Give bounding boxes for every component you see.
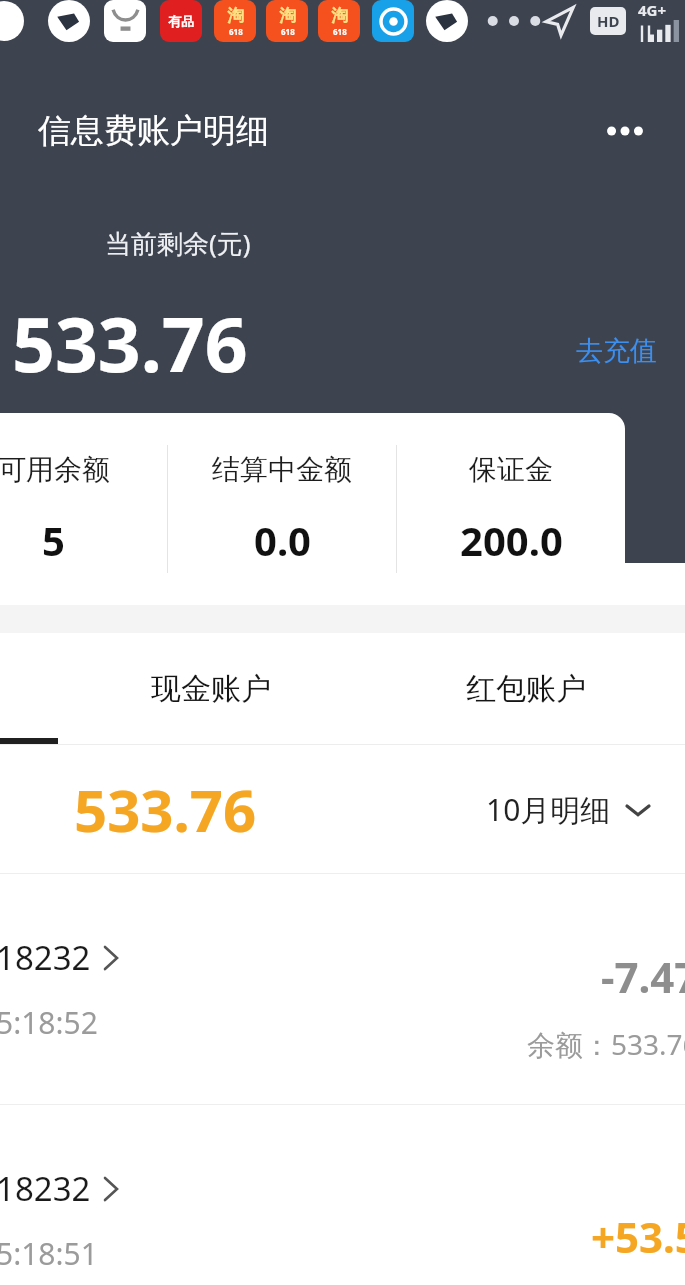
staticText: 去充值 xyxy=(576,334,657,368)
staticText: 18232 xyxy=(0,1166,91,1211)
staticText: 保证金 xyxy=(469,452,553,487)
staticText: -7.47 xyxy=(601,948,685,1005)
staticText: 淘 xyxy=(331,5,348,26)
staticText: 淘 xyxy=(227,5,244,26)
button[interactable]: 18232 xyxy=(0,1105,685,1285)
staticText: 533.76 xyxy=(74,770,257,849)
staticText: 当前剩余(元) xyxy=(105,225,251,261)
staticText: 有品 xyxy=(168,13,194,29)
staticText: 5:18:52 xyxy=(0,1002,98,1043)
staticText: 0.0 xyxy=(254,513,311,567)
staticText: 结算中金额 xyxy=(212,452,352,487)
staticText: 10月明细 xyxy=(486,789,611,830)
staticText: 余额：533.76 xyxy=(527,1025,685,1063)
staticText: 533.76 xyxy=(12,292,248,394)
button[interactable]: 18232 xyxy=(0,874,685,1104)
staticText: +53.5 xyxy=(591,1208,685,1265)
staticText: 618 xyxy=(229,26,243,37)
staticText: 5 xyxy=(42,513,65,567)
button[interactable]: 现金账户 xyxy=(78,633,343,745)
button[interactable]: 结算中金额 xyxy=(168,413,396,605)
button[interactable]: 红包账户 xyxy=(393,633,658,745)
staticText: 4G+ xyxy=(638,0,667,20)
staticText: 现金账户 xyxy=(151,670,271,708)
staticText: HD xyxy=(597,11,620,31)
button[interactable]: 可用余额 xyxy=(0,413,167,605)
staticText: 618 xyxy=(333,26,347,37)
staticText: 可用余额 xyxy=(0,452,110,487)
staticText: 信息费账户明细 xyxy=(38,110,269,152)
button[interactable]: 10月明细 xyxy=(480,783,657,836)
staticText: 红包账户 xyxy=(466,670,586,708)
staticText: 200.0 xyxy=(460,513,563,567)
staticText: 18232 xyxy=(0,935,91,980)
staticText: 淘 xyxy=(279,5,296,26)
button[interactable]: 保证金 xyxy=(397,413,625,605)
button[interactable]: 去充值 xyxy=(570,328,663,374)
button[interactable]: More options xyxy=(595,101,655,161)
staticText: 618 xyxy=(281,26,295,37)
staticText: 5:18:51 xyxy=(0,1233,98,1274)
